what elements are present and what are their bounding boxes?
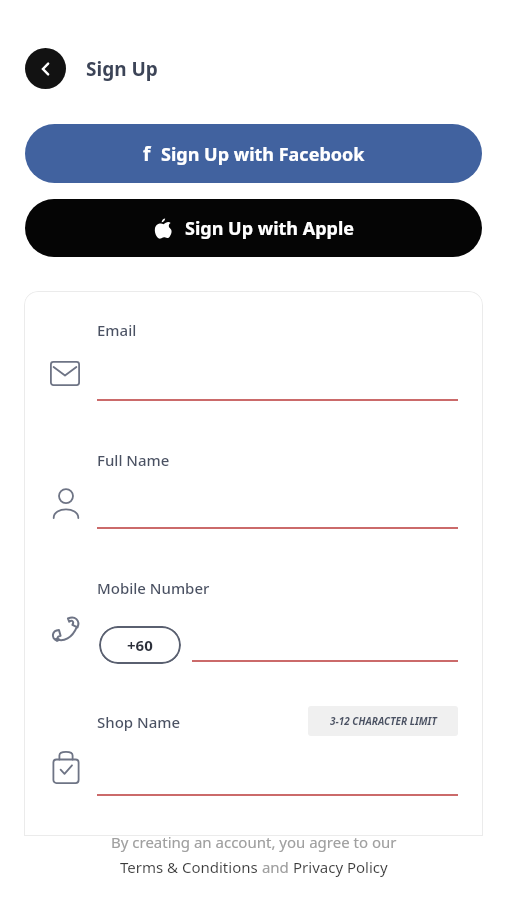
staticText: Terms & Conditions (120, 857, 258, 877)
button[interactable]: Back (25, 48, 66, 89)
staticText: Full Name (97, 450, 170, 470)
staticText: and (258, 857, 293, 877)
staticText: Sign Up (86, 56, 158, 82)
button[interactable]: Terms & Conditions (120, 857, 258, 877)
button[interactable]: Sign Up with Apple (25, 199, 482, 257)
button[interactable]: f (25, 124, 482, 183)
button[interactable]: +60 (99, 626, 181, 664)
staticText: f (143, 141, 151, 167)
staticText: Sign Up with Facebook (161, 142, 365, 167)
staticText: +60 (127, 635, 153, 655)
staticText: Shop Name (97, 712, 181, 732)
staticText: Sign Up with Apple (185, 216, 355, 241)
staticText: Email (97, 320, 137, 340)
button[interactable]: Privacy Policy (293, 857, 388, 877)
staticText: By creating an account, you agree to our (111, 832, 397, 852)
staticText: Mobile Number (97, 578, 210, 598)
staticText: Privacy Policy (293, 857, 388, 877)
staticText: 3-12 CHARACTER LIMIT (330, 714, 437, 728)
